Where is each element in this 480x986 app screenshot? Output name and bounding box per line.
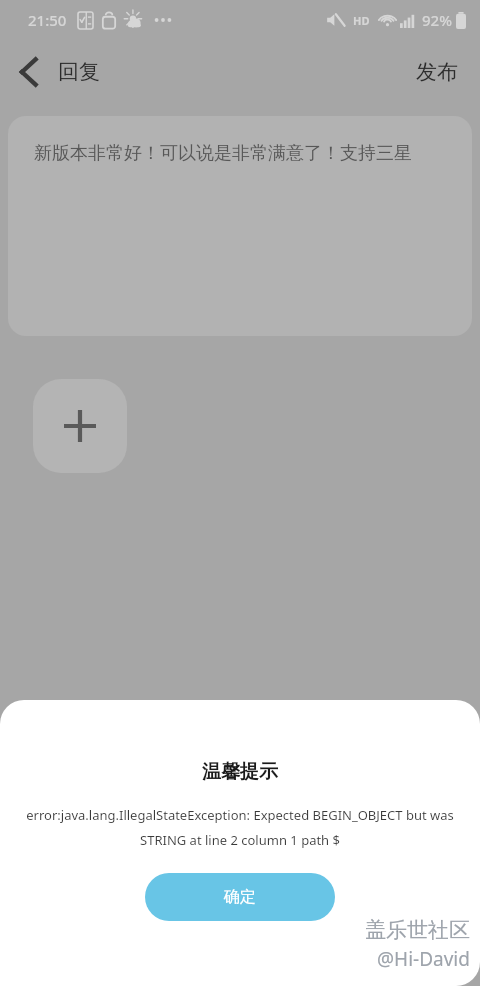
button[interactable]: Back: [0, 40, 58, 104]
staticText: 92%: [422, 10, 452, 30]
staticText: 盖乐世社区: [365, 917, 470, 943]
staticText: error:java.lang.IllegalStateException: E…: [26, 806, 454, 848]
staticText: 确定: [224, 887, 256, 907]
staticText: 21:50: [28, 10, 67, 30]
staticText: 温馨提示: [202, 760, 278, 784]
staticText: 发布: [416, 59, 458, 85]
staticText: HD: [353, 13, 370, 28]
staticText: 回复: [58, 59, 100, 85]
staticText: 新版本非常好！可以说是非常满意了！支持三星: [34, 142, 412, 165]
button[interactable]: 回复: [58, 40, 100, 104]
button[interactable]: 新版本非常好！可以说是非常满意了！支持三星: [8, 116, 472, 336]
staticText: @Hi-David: [377, 946, 470, 972]
button[interactable]: 确定: [145, 873, 335, 921]
button[interactable]: Add image: [33, 379, 127, 473]
button[interactable]: 发布: [394, 40, 480, 104]
